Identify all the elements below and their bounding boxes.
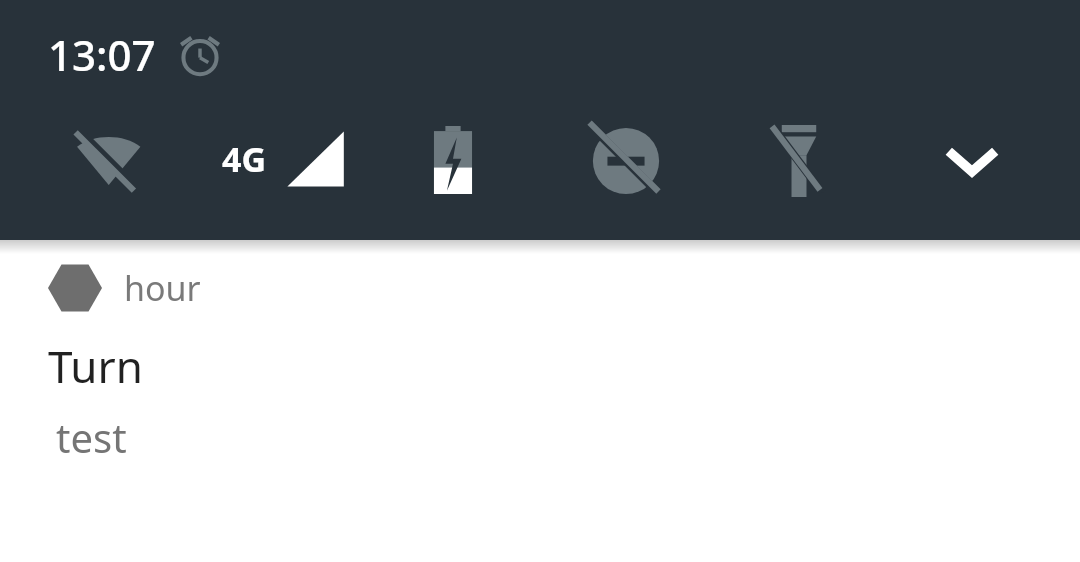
staticText: hour xyxy=(124,265,201,311)
button[interactable]: Mobile data 4G xyxy=(222,123,347,195)
button[interactable]: Flashlight off xyxy=(764,123,834,199)
button[interactable]: Expand quick settings xyxy=(938,127,1006,195)
staticText: 13:07 xyxy=(48,26,156,83)
button[interactable]: Wi-Fi off xyxy=(68,128,148,190)
button[interactable]: Battery charging xyxy=(418,125,488,195)
staticText: test xyxy=(56,410,127,464)
button[interactable]: Do not disturb off xyxy=(590,125,662,197)
staticText: 4G xyxy=(222,136,267,182)
button[interactable]: hour xyxy=(0,240,1080,464)
staticText: Turn xyxy=(48,336,143,396)
